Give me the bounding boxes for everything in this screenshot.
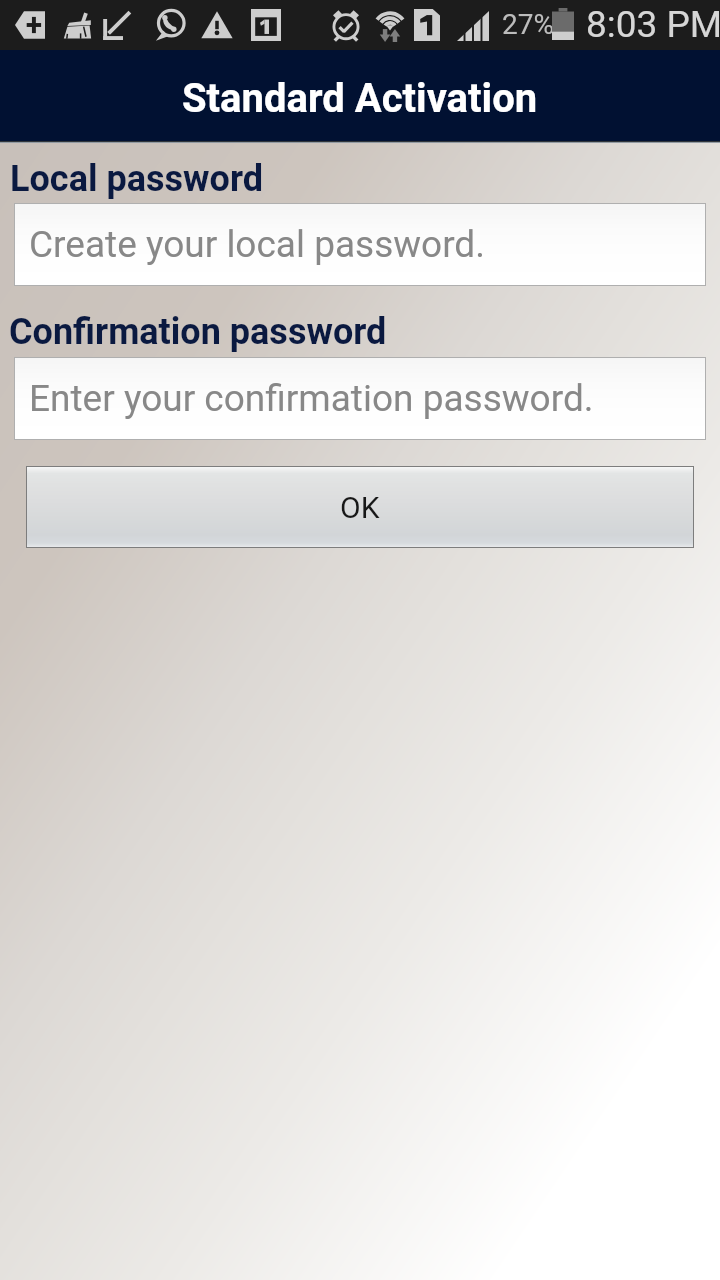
other: WhatsApp — [154, 9, 186, 41]
staticText: OK — [340, 490, 380, 525]
other: Warning — [201, 10, 233, 40]
other: Battery 27 percent — [552, 8, 574, 40]
other: Alarm set — [329, 8, 363, 42]
other: Clean — [62, 11, 92, 39]
staticText: Create your local password. — [29, 223, 485, 266]
staticText: Local password — [10, 158, 264, 200]
staticText: 27% — [502, 8, 554, 41]
other: Signal strength — [457, 11, 489, 41]
staticText: Enter your confirmation password. — [29, 377, 594, 420]
button[interactable]: Enter your confirmation password. — [14, 357, 706, 440]
staticText: 8:03 PM — [586, 3, 720, 46]
staticText: Standard Activation — [182, 75, 538, 122]
other: Download — [102, 10, 132, 40]
other: One message — [251, 9, 281, 41]
button[interactable]: Create your local password. — [14, 203, 706, 286]
staticText: Confirmation password — [9, 311, 387, 353]
other: Wi-Fi connected — [373, 8, 407, 42]
button[interactable]: OK — [26, 466, 694, 548]
other: SIM 1 — [414, 9, 440, 41]
other: Add notification — [15, 10, 45, 40]
